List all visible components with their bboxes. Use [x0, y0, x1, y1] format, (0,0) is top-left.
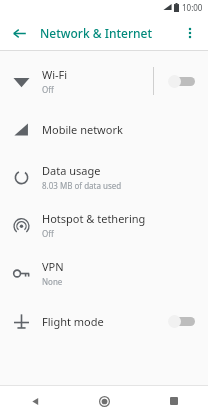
button[interactable]: Back	[6, 20, 32, 46]
staticText: Mobile network	[42, 122, 123, 137]
button[interactable]: Hotspot & tethering	[0, 201, 208, 249]
button[interactable]: Home	[70, 386, 139, 416]
button[interactable]: Recents	[139, 386, 208, 416]
button[interactable]: Mobile network	[0, 105, 208, 153]
staticText: Wi-Fi	[42, 67, 68, 82]
button[interactable]: Flight mode	[0, 297, 208, 345]
staticText: Flight mode	[42, 314, 104, 329]
button[interactable]: Back	[0, 386, 70, 416]
staticText: 8.03 MB of data used	[42, 180, 122, 191]
staticText: 10:00	[182, 2, 203, 13]
staticText: Hotspot & tethering	[42, 211, 146, 226]
button[interactable]: Flight mode toggle	[168, 308, 198, 334]
staticText: Network & Internet	[40, 25, 153, 41]
staticText: VPN	[42, 259, 64, 274]
staticText: Off	[42, 84, 54, 95]
staticText: Data usage	[42, 163, 101, 178]
button[interactable]: More options	[177, 20, 203, 46]
button[interactable]: Wi-Fi	[0, 57, 208, 105]
staticText: None	[42, 276, 63, 287]
button[interactable]: Wi-Fi toggle	[168, 68, 198, 94]
staticText: Off	[42, 228, 54, 239]
button[interactable]: Data usage	[0, 153, 208, 201]
button[interactable]: VPN	[0, 249, 208, 297]
